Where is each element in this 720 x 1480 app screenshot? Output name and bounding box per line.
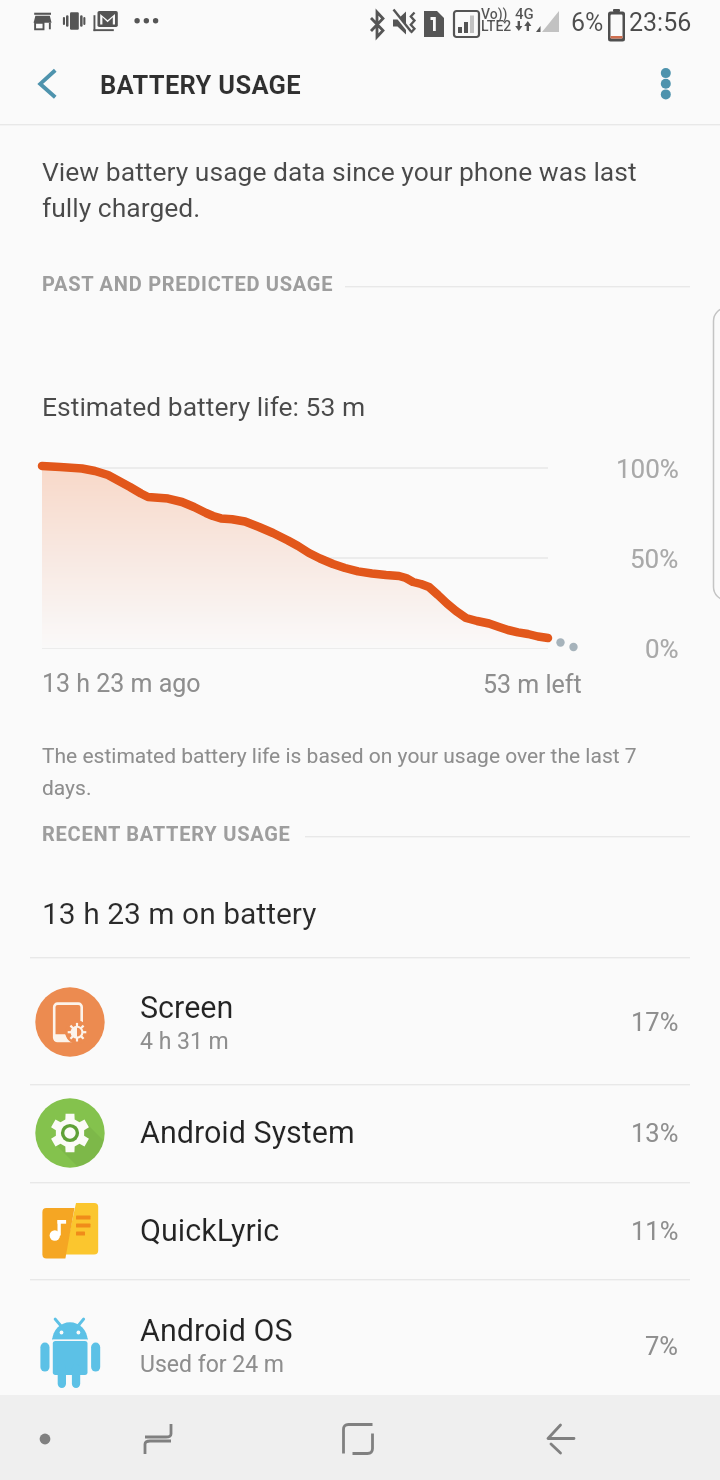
staticText: Vo)): [481, 6, 508, 22]
staticText: View battery usage data since your phone…: [42, 156, 648, 224]
button[interactable]: Back: [526, 1404, 594, 1472]
staticText: PAST AND PREDICTED USAGE: [42, 272, 334, 295]
staticText: 0%: [645, 634, 679, 664]
button[interactable]: Navigate up: [17, 53, 79, 115]
staticText: 7%: [645, 1331, 679, 1361]
staticText: 100%: [616, 454, 679, 484]
button[interactable]: Android OS: [0, 1279, 720, 1412]
button[interactable]: Android System: [0, 1084, 720, 1182]
staticText: LTE2: [481, 18, 512, 34]
staticText: 13 h 23 m ago: [42, 669, 201, 698]
staticText: 4 h 31 m: [140, 1028, 229, 1055]
button[interactable]: Recent apps: [124, 1404, 192, 1472]
staticText: Android System: [140, 1115, 355, 1151]
staticText: 11%: [631, 1216, 679, 1246]
staticText: The estimated battery life is based on y…: [42, 744, 642, 800]
staticText: Estimated battery life: 53 m: [42, 391, 366, 422]
staticText: 13%: [631, 1118, 679, 1148]
button[interactable]: QuickLyric: [0, 1182, 720, 1279]
staticText: 4G: [515, 5, 534, 23]
button[interactable]: More options: [635, 53, 697, 115]
staticText: 23:56: [629, 8, 692, 37]
button[interactable]: Home: [324, 1404, 392, 1472]
button[interactable]: Menu: [11, 1404, 79, 1472]
staticText: BATTERY USAGE: [100, 70, 301, 100]
button[interactable]: Screen: [0, 957, 720, 1087]
staticText: Screen: [140, 990, 234, 1026]
staticText: 13 h 23 m on battery: [42, 896, 317, 931]
staticText: 53 m left: [483, 670, 582, 699]
staticText: Used for 24 m: [140, 1351, 284, 1378]
staticText: 17%: [631, 1007, 679, 1037]
staticText: 50%: [630, 544, 679, 574]
staticText: QuickLyric: [140, 1213, 280, 1249]
staticText: Android OS: [140, 1313, 293, 1349]
staticText: RECENT BATTERY USAGE: [42, 822, 291, 845]
staticText: 6%: [571, 8, 604, 37]
